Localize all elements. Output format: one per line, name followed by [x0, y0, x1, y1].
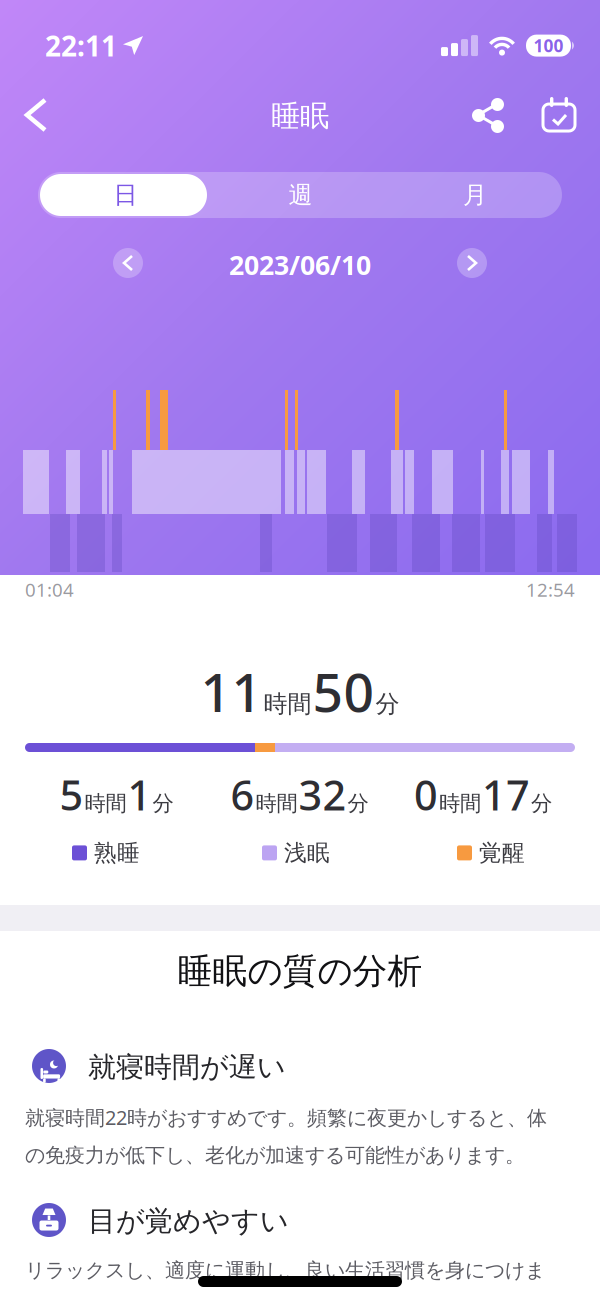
staticText: 50 [312, 656, 374, 727]
staticText: 睡眠 [271, 98, 329, 134]
button[interactable]: 週 [213, 172, 388, 218]
staticText: 32 [298, 767, 346, 822]
staticText: 時間 [84, 790, 126, 816]
button[interactable]: Previous day [113, 248, 143, 278]
staticText: 分 [152, 790, 173, 816]
staticText: 22:11 [45, 27, 117, 64]
staticText: 0 [414, 767, 438, 822]
staticText: 就寝時間が遅い [88, 1050, 286, 1084]
button[interactable]: 日 [38, 172, 213, 218]
staticText: 時間 [439, 790, 481, 816]
button[interactable]: Share [472, 98, 504, 133]
staticText: 分 [375, 689, 399, 719]
staticText: 100 [533, 34, 563, 57]
staticText: リラックスし、適度に運動し、良い生活習慣を身につけま [25, 1258, 545, 1283]
staticText: 覚醒 [479, 839, 525, 867]
staticText: 分 [347, 790, 368, 816]
button[interactable]: 月 [388, 172, 562, 218]
staticText: 時間 [255, 790, 297, 816]
button[interactable]: Calendar [543, 97, 577, 133]
staticText: 睡眠の質の分析 [177, 950, 422, 993]
staticText: 熟睡 [94, 839, 140, 867]
staticText: 週 [288, 180, 312, 210]
staticText: 2023/06/10 [229, 247, 371, 282]
staticText: 6 [230, 767, 254, 822]
button[interactable]: Back [27, 100, 45, 130]
staticText: の免疫力が低下し、老化が加速する可能性があります。 [25, 1143, 525, 1168]
staticText: 浅眠 [284, 839, 330, 867]
staticText: 12:54 [526, 577, 575, 602]
staticText: 17 [482, 767, 530, 822]
staticText: 時間 [263, 689, 311, 719]
staticText: 日 [113, 180, 137, 210]
staticText: 5 [59, 767, 83, 822]
staticText: 分 [531, 790, 552, 816]
staticText: 就寝時間22時がおすすめです。頻繁に夜更かしすると、体 [25, 1104, 547, 1131]
button[interactable]: Next day [457, 248, 487, 278]
staticText: 目が覚めやすい [88, 1204, 289, 1238]
staticText: 11 [200, 656, 262, 727]
staticText: 1 [127, 767, 151, 822]
staticText: 01:04 [25, 577, 74, 602]
staticText: 月 [463, 180, 487, 210]
